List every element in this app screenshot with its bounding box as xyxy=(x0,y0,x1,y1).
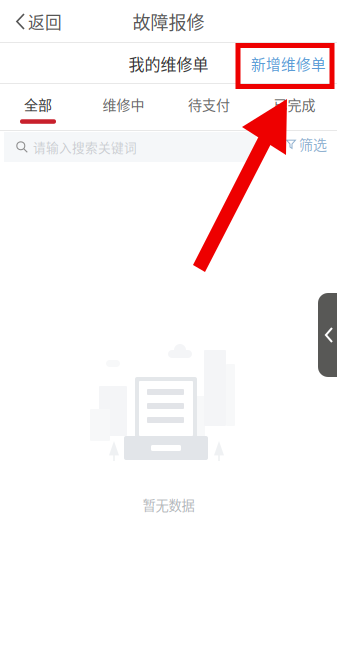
button[interactable]: 全部 xyxy=(0,94,80,130)
staticText: 暂无数据 xyxy=(142,495,194,514)
staticText: 新增维修单 xyxy=(251,53,326,74)
staticText: 全部 xyxy=(24,94,52,114)
staticText: 已完成 xyxy=(273,94,315,114)
staticText: 维修中 xyxy=(102,94,144,114)
staticText: 故障报修 xyxy=(132,8,204,35)
button[interactable]: Open side drawer xyxy=(318,293,337,377)
button[interactable]: 筛选 xyxy=(275,132,337,156)
button[interactable]: 维修中 xyxy=(81,94,165,130)
button[interactable]: 新增维修单 xyxy=(251,43,337,84)
button[interactable]: 已完成 xyxy=(252,94,336,130)
button[interactable]: 返回 xyxy=(0,0,104,43)
staticText: 筛选 xyxy=(299,134,327,154)
staticText: 请输入搜索关键词 xyxy=(33,138,137,156)
staticText: 待支付 xyxy=(188,94,230,114)
staticText: 返回 xyxy=(28,9,62,33)
staticText: 我的维修单 xyxy=(128,52,208,75)
button[interactable]: 待支付 xyxy=(167,94,251,130)
